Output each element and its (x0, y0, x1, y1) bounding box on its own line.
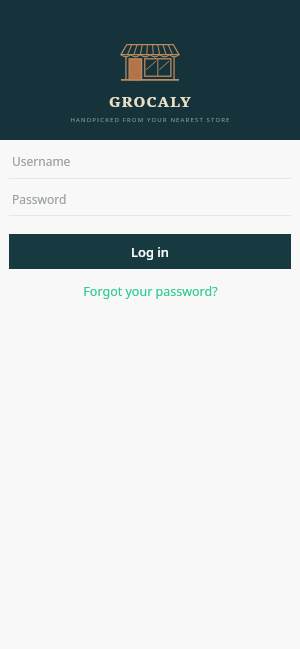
staticText: GROCALY (109, 91, 192, 111)
button[interactable]: Log in (9, 234, 291, 269)
staticText: HANDPICKED FROM YOUR NEAREST STORE (70, 116, 231, 124)
staticText: Username (12, 153, 71, 169)
staticText: Forgot your password? (83, 283, 218, 300)
staticText: Password (12, 191, 67, 207)
button[interactable]: Password (9, 179, 291, 215)
staticText: Log in (131, 243, 169, 261)
button[interactable]: Forgot your password? (75, 279, 226, 304)
button[interactable]: Username (9, 140, 291, 178)
other: Grocaly store logo (121, 42, 179, 84)
